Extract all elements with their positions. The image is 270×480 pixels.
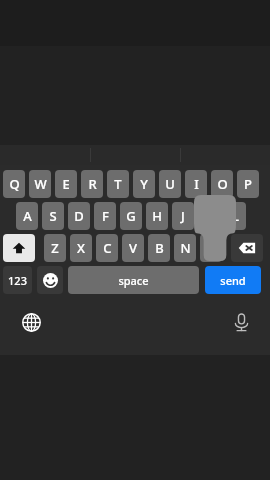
- button[interactable]: H: [146, 202, 168, 230]
- staticText: I: [194, 175, 199, 193]
- button[interactable]: Q: [3, 170, 25, 198]
- button[interactable]: U: [159, 170, 181, 198]
- button[interactable]: Backspace: [231, 234, 263, 262]
- button[interactable]: Voice input: [226, 307, 256, 337]
- staticText: Z: [51, 239, 59, 257]
- button[interactable]: C: [96, 234, 118, 262]
- staticText: W: [34, 175, 47, 193]
- staticText: O: [217, 175, 228, 193]
- button[interactable]: W: [29, 170, 51, 198]
- staticText: S: [49, 207, 57, 225]
- button[interactable]: B: [148, 234, 170, 262]
- button[interactable]: F: [94, 202, 116, 230]
- button[interactable]: M: [200, 234, 222, 262]
- button[interactable]: S: [42, 202, 64, 230]
- button[interactable]: Y: [133, 170, 155, 198]
- staticText: V: [129, 239, 137, 257]
- staticText: C: [103, 239, 112, 257]
- button[interactable]: V: [122, 234, 144, 262]
- button[interactable]: E: [55, 170, 77, 198]
- staticText: D: [74, 207, 84, 225]
- button[interactable]: Z: [44, 234, 66, 262]
- staticText: A: [23, 207, 32, 225]
- staticText: 123: [8, 273, 27, 288]
- staticText: J: [181, 207, 185, 225]
- button[interactable]: D: [68, 202, 90, 230]
- staticText: Y: [140, 175, 148, 193]
- staticText: F: [102, 207, 109, 225]
- button[interactable]: T: [107, 170, 129, 198]
- staticText: N: [180, 239, 191, 257]
- button[interactable]: A: [16, 202, 38, 230]
- button[interactable]: O: [211, 170, 233, 198]
- staticText: P: [244, 175, 252, 193]
- button[interactable]: G: [120, 202, 142, 230]
- staticText: space: [118, 273, 149, 288]
- staticText: L: [232, 207, 239, 225]
- staticText: X: [77, 239, 85, 257]
- button[interactable]: P: [237, 170, 259, 198]
- button[interactable]: J: [172, 202, 194, 230]
- button[interactable]: Change keyboard: [16, 307, 46, 337]
- staticText: B: [155, 239, 164, 257]
- button[interactable]: space: [68, 266, 199, 294]
- button[interactable]: L: [224, 202, 246, 230]
- staticText: E: [62, 175, 70, 193]
- staticText: Q: [9, 175, 20, 193]
- button[interactable]: send: [205, 266, 261, 294]
- button[interactable]: Emoji: [37, 266, 63, 294]
- staticText: U: [165, 175, 175, 193]
- button[interactable]: Shift: [3, 234, 35, 262]
- button[interactable]: R: [81, 170, 103, 198]
- button[interactable]: N: [174, 234, 196, 262]
- staticText: G: [126, 207, 136, 225]
- button[interactable]: 123: [3, 266, 32, 294]
- staticText: T: [114, 175, 122, 193]
- staticText: R: [88, 175, 97, 193]
- staticText: H: [152, 207, 162, 225]
- button[interactable]: I: [185, 170, 207, 198]
- staticText: send: [220, 273, 246, 288]
- button[interactable]: X: [70, 234, 92, 262]
